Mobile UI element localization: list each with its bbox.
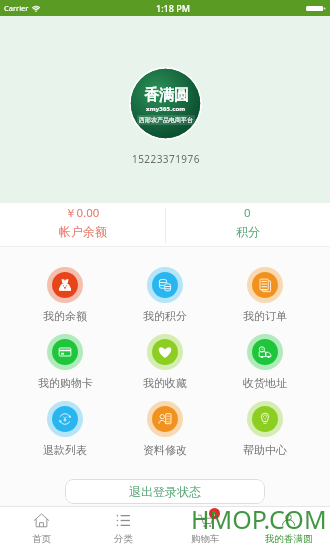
staticText: 1:18 PM — [156, 2, 190, 14]
staticText: 帮助中心 — [243, 443, 287, 457]
staticText: 我的香满圆 — [265, 533, 313, 545]
staticText: Carrier — [4, 3, 29, 13]
staticText: 1 — [212, 509, 217, 519]
staticText: ￥0.00 — [65, 205, 100, 221]
staticText: 我的购物卡 — [38, 376, 93, 390]
button[interactable]: 退出登录状态 — [65, 479, 265, 504]
staticText: 我的订单 — [243, 309, 287, 323]
staticText: 积分 — [236, 224, 260, 239]
staticText: 分类 — [114, 533, 133, 545]
staticText: xmy365.com — [146, 105, 186, 113]
button[interactable]: 0 — [165, 203, 330, 247]
button[interactable]: 收货地址 — [215, 328, 315, 395]
button[interactable]: 我的余额 — [15, 261, 115, 328]
button[interactable]: 首页 — [0, 507, 82, 550]
button[interactable]: 退款列表 — [15, 395, 115, 462]
staticText: 退款列表 — [43, 443, 87, 457]
button[interactable]: 购物车 — [164, 507, 247, 550]
staticText: 15223371976 — [132, 152, 200, 166]
button[interactable]: 帮助中心 — [215, 395, 315, 462]
staticText: 退出登录状态 — [129, 484, 201, 499]
staticText: HMOP.COM — [191, 502, 327, 536]
staticText: 收货地址 — [243, 376, 287, 390]
button[interactable]: 我的购物卡 — [15, 328, 115, 395]
staticText: 我的积分 — [143, 309, 187, 323]
button[interactable]: 我的收藏 — [115, 328, 215, 395]
button[interactable]: 我的香满圆 — [247, 507, 330, 550]
button[interactable]: 我的积分 — [115, 261, 215, 328]
staticText: 帐户余额 — [59, 224, 107, 239]
button[interactable]: ￥0.00 — [0, 203, 165, 247]
staticText: 购物车 — [191, 533, 220, 545]
staticText: 我的余额 — [43, 309, 87, 323]
staticText: 西部农产品电商平台 — [139, 116, 193, 124]
staticText: 我的收藏 — [143, 376, 187, 390]
staticText: 香满圆 — [144, 86, 189, 105]
button[interactable]: 资料修改 — [115, 395, 215, 462]
staticText: 资料修改 — [143, 443, 187, 457]
staticText: 首页 — [32, 533, 51, 545]
button[interactable]: 分类 — [82, 507, 164, 550]
staticText: 0 — [244, 205, 251, 221]
button[interactable]: 我的订单 — [215, 261, 315, 328]
